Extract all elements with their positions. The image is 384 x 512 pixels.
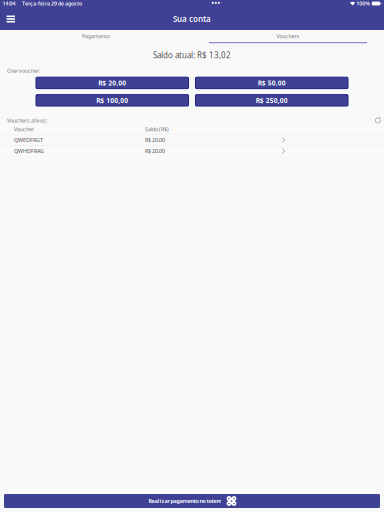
button[interactable]: Menu	[4, 13, 17, 25]
button[interactable]: Atualizar	[375, 117, 381, 124]
button[interactable]: QWHDFRAG	[0, 146, 384, 156]
staticText: QWHDFRAG	[14, 147, 44, 154]
staticText: Voucher	[14, 126, 34, 133]
staticText: R$ 20,00	[145, 147, 165, 154]
staticText: R$ 250,00	[256, 96, 288, 105]
staticText: Pagamento	[82, 33, 110, 40]
button[interactable]: R$ 50,00	[195, 77, 348, 89]
staticText: R$ 20,00	[98, 78, 126, 87]
staticText: 14:04	[3, 0, 16, 7]
button[interactable]: R$ 250,00	[195, 95, 348, 106]
staticText: Vouchers ativos:	[7, 117, 47, 124]
button[interactable]: Pagamento	[0, 30, 192, 43]
staticText: Vouchers	[276, 33, 299, 40]
staticText: Saldo atual: R$ 13,02	[153, 50, 231, 60]
button[interactable]: Realizar pagamento no totem	[4, 494, 380, 508]
button[interactable]: QWEDFRGT	[0, 135, 384, 145]
staticText: R$ 100,00	[96, 96, 128, 105]
staticText: Criar voucher:	[7, 67, 40, 74]
staticText: •••	[212, 0, 221, 8]
staticText: Terça-feira 29 de agosto	[22, 0, 82, 7]
button[interactable]: R$ 20,00	[36, 77, 188, 89]
staticText: QWEDFRGT	[14, 136, 43, 144]
staticText: 100%	[356, 0, 370, 7]
staticText: R$ 20,00	[145, 136, 165, 144]
staticText: R$ 50,00	[258, 78, 286, 87]
button[interactable]: R$ 100,00	[36, 95, 188, 106]
button[interactable]: Vouchers	[192, 30, 384, 43]
staticText: Realizar pagamento no totem	[148, 497, 221, 505]
staticText: Saldo (R$)	[145, 126, 169, 133]
staticText: Sua conta	[173, 14, 211, 24]
